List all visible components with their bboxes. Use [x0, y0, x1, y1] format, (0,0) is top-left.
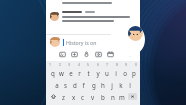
staticText: a [55, 81, 59, 89]
staticText: y [96, 69, 100, 77]
staticText: 0 [135, 62, 137, 67]
button[interactable]: f [80, 80, 87, 89]
staticText: f [82, 81, 85, 89]
staticText: o [123, 69, 127, 77]
staticText: 2 [59, 62, 61, 67]
button[interactable]: Calendar [106, 50, 115, 59]
button[interactable]: w [58, 68, 65, 77]
staticText: r [78, 69, 81, 77]
button[interactable]: a [53, 80, 60, 89]
button[interactable]: q [49, 68, 56, 77]
button[interactable]: l [126, 80, 133, 89]
button[interactable]: Add [70, 50, 79, 59]
staticText: History is on [66, 39, 97, 46]
staticText: h [101, 81, 105, 89]
button[interactable]: x [70, 92, 77, 101]
staticText: v [91, 93, 95, 101]
staticText: u [105, 69, 109, 77]
staticText: k [119, 81, 123, 89]
button[interactable]: d [71, 80, 78, 89]
button[interactable]: v [89, 92, 96, 101]
staticText: n [111, 93, 115, 101]
button[interactable]: Chat bubble [110, 22, 145, 57]
button[interactable]: y [94, 68, 101, 77]
staticText: s [64, 81, 67, 89]
button[interactable]: n [109, 92, 116, 101]
staticText: q [51, 69, 55, 77]
staticText: g [92, 81, 96, 89]
staticText: 3 [68, 62, 70, 67]
staticText: 6 [97, 62, 99, 67]
button[interactable]: t [85, 68, 92, 77]
button[interactable]: Shift [49, 92, 57, 101]
button[interactable]: GIF [94, 50, 103, 59]
button[interactable]: Stickers [82, 50, 91, 59]
staticText: w [59, 69, 64, 77]
staticText: 5 [87, 62, 89, 67]
button[interactable]: s [62, 80, 69, 89]
button[interactable]: z [60, 92, 67, 101]
staticText: e [69, 69, 73, 77]
staticText: d [73, 81, 77, 89]
staticText: c [81, 93, 84, 101]
staticText: 9 [125, 62, 127, 67]
button[interactable]: p [130, 68, 137, 77]
button[interactable]: g [90, 80, 97, 89]
button[interactable]: m [118, 92, 125, 101]
staticText: i [115, 69, 117, 77]
staticText: l [129, 81, 131, 89]
button[interactable]: e [67, 68, 74, 77]
staticText: 8 [116, 62, 118, 67]
button[interactable]: Backspace [128, 93, 137, 100]
button[interactable]: r [76, 68, 83, 77]
button[interactable]: i [112, 68, 119, 77]
staticText: z [62, 93, 65, 101]
staticText: 4 [78, 62, 80, 67]
staticText: x [72, 93, 76, 101]
staticText: 7 [106, 62, 108, 67]
button[interactable]: h [99, 80, 106, 89]
button[interactable]: u [103, 68, 110, 77]
button[interactable]: o [121, 68, 128, 77]
staticText: j [111, 81, 113, 89]
staticText: t [87, 69, 90, 77]
staticText: b [101, 93, 105, 101]
staticText: m [119, 93, 125, 101]
button[interactable]: b [99, 92, 106, 101]
staticText: p [132, 69, 136, 77]
button[interactable]: j [108, 80, 115, 89]
button[interactable]: Gallery [58, 50, 67, 59]
button[interactable]: k [117, 80, 124, 89]
button[interactable]: c [79, 92, 86, 101]
staticText: 1 [49, 62, 51, 67]
